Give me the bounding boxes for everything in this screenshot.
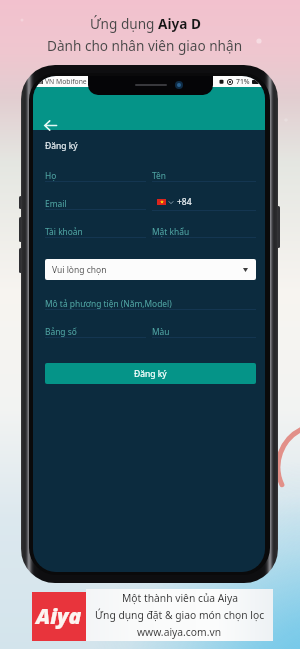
- staticText: Aiya: [36, 602, 82, 631]
- staticText: Mô tả phương tiện (Năm,Model): [45, 298, 172, 309]
- staticText: Họ: [45, 170, 57, 181]
- staticText: Đăng ký: [45, 140, 78, 152]
- staticText: Đăng ký: [134, 368, 167, 380]
- staticText: Màu: [152, 326, 170, 337]
- staticText: Aiya D: [158, 14, 201, 33]
- staticText: 71%: [236, 77, 250, 86]
- staticText: Bảng số: [45, 326, 77, 337]
- button[interactable]: Back: [38, 113, 62, 137]
- staticText: VN Mobifone: [45, 77, 87, 86]
- staticText: +84: [177, 196, 192, 208]
- staticText: Mật khẩu: [152, 226, 190, 237]
- button[interactable]: Vui lòng chọn: [45, 259, 256, 280]
- staticText: Vui lòng chọn: [52, 264, 107, 276]
- button[interactable]: Đăng ký: [45, 363, 256, 384]
- staticText: Ứng dụng: [90, 14, 158, 33]
- staticText: Ứng dụng đặt & giao món chọn lọc: [95, 608, 265, 622]
- staticText: Một thành viên của Aiya: [122, 591, 238, 605]
- staticText: Tài khoản: [45, 226, 83, 237]
- staticText: Tên: [152, 170, 166, 181]
- staticText: www.aiya.com.vn: [137, 625, 222, 639]
- staticText: Email: [45, 198, 67, 209]
- staticText: Dành cho nhân viên giao nhận: [47, 36, 243, 55]
